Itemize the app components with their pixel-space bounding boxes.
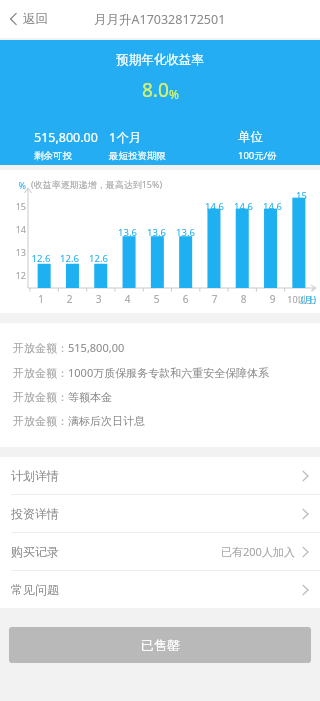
staticText: 15 — [6, 200, 26, 212]
staticText: 13.6 — [171, 226, 200, 239]
staticText: 开放金额： — [13, 414, 68, 428]
staticText: % — [169, 86, 179, 102]
staticText: (月) — [301, 293, 317, 306]
staticText: 购买记录 — [11, 544, 59, 559]
staticText: 14.6 — [229, 200, 258, 213]
staticText: 6 — [171, 292, 200, 306]
staticText: % — [6, 179, 26, 191]
staticText: 14.6 — [258, 200, 287, 213]
staticText: 单位 — [238, 129, 263, 145]
staticText: 9 — [258, 292, 287, 306]
button[interactable]: 返回 — [0, 5, 58, 33]
staticText: 12.6 — [55, 252, 84, 265]
staticText: 7 — [200, 292, 229, 306]
staticText: 返回 — [23, 11, 48, 27]
button[interactable]: 常见问题 — [0, 571, 320, 608]
staticText: 已售罄 — [141, 637, 180, 653]
staticText: 13.6 — [113, 226, 142, 239]
staticText: 12 — [6, 269, 26, 281]
button[interactable]: 购买记录 — [0, 533, 320, 571]
staticText: 12.6 — [27, 252, 55, 265]
staticText: 5 — [142, 292, 171, 306]
staticText: 剩余可投 — [34, 150, 72, 162]
button[interactable]: 投资详情 — [0, 495, 320, 533]
staticText: 3 — [84, 292, 113, 306]
staticText: 14 — [6, 223, 26, 235]
staticText: 1个月 — [109, 129, 142, 146]
staticText: 100元/份 — [238, 149, 277, 162]
staticText: 1 — [27, 292, 55, 306]
staticText: 开放金额： — [13, 366, 68, 380]
staticText: 投资详情 — [11, 506, 59, 521]
staticText: 开放金额： — [13, 341, 68, 355]
staticText: 月月升A170328172501 — [94, 11, 226, 28]
staticText: 常见问题 — [11, 582, 59, 597]
staticText: 1000万质保服务专款和六重安全保障体系 — [68, 365, 270, 380]
staticText: 满标后次日计息 — [68, 414, 145, 428]
button[interactable]: 已售罄 — [9, 627, 311, 663]
staticText: 4 — [113, 292, 142, 306]
staticText: 最短投资期限 — [109, 150, 166, 162]
staticText: 12.6 — [84, 252, 113, 265]
staticText: 10以上 — [287, 293, 316, 305]
staticText: 8.0 — [142, 77, 169, 103]
staticText: 计划详情 — [11, 468, 59, 483]
button[interactable]: 计划详情 — [0, 457, 320, 495]
staticText: 开放金额： — [13, 390, 68, 404]
staticText: 已有200人加入 — [221, 544, 295, 559]
staticText: 13 — [6, 246, 26, 258]
staticText: 14.6 — [200, 200, 229, 213]
staticText: 15 — [287, 189, 316, 202]
staticText: 2 — [55, 292, 84, 306]
staticText: 515,800.00 — [34, 129, 98, 146]
staticText: 预期年化收益率 — [0, 52, 320, 68]
staticText: 等额本金 — [68, 390, 112, 404]
staticText: 515,800,00 — [68, 340, 125, 355]
staticText: (收益率逐期递增，最高达到15%) — [31, 178, 163, 190]
staticText: 8 — [229, 292, 258, 306]
staticText: 13.6 — [142, 226, 171, 239]
